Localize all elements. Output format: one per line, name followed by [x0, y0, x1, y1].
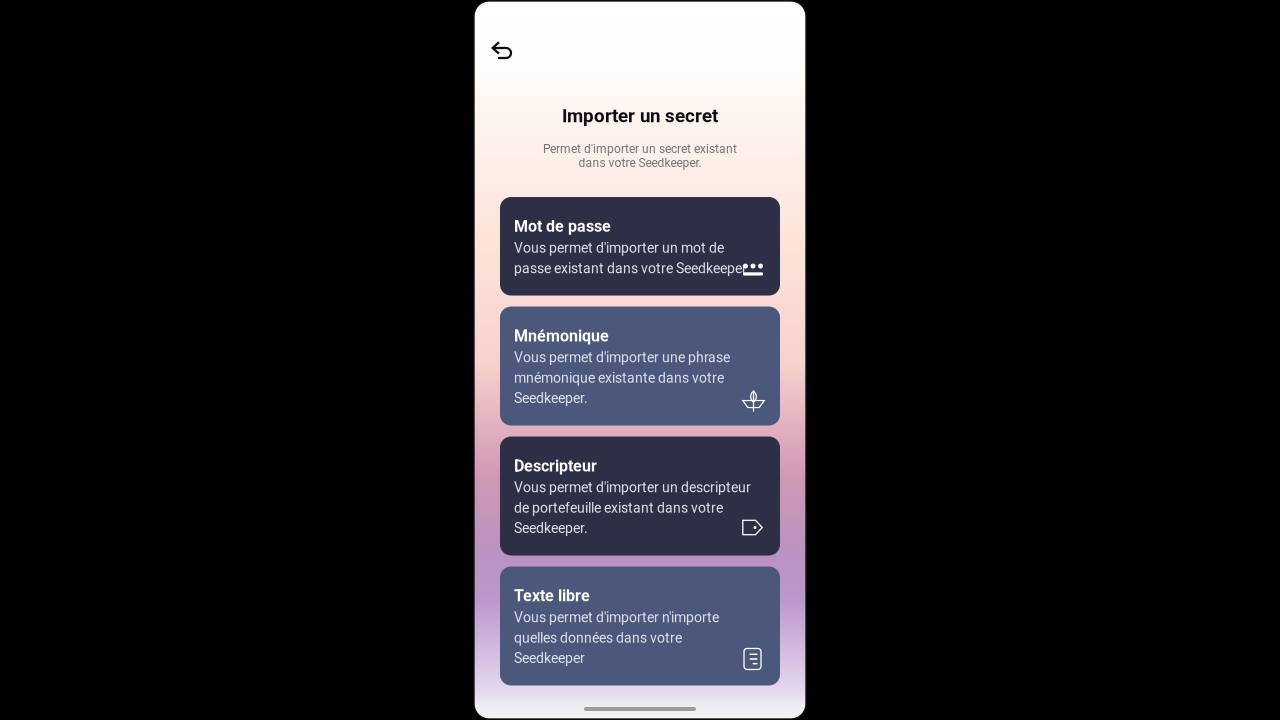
staticText: Texte libre [514, 586, 590, 605]
staticText: Vous permet d'importer n'importe [514, 609, 719, 626]
staticText: Permet d'importer un secret existant [543, 142, 737, 156]
staticText: dans votre Seedkeeper. [578, 156, 701, 170]
staticText: Seedkeeper. [514, 520, 588, 536]
staticText: passe existant dans votre Seedkeeper [514, 260, 747, 277]
button[interactable]: Mot de passe [500, 197, 780, 296]
staticText: Vous permet d'importer un descripteur [514, 479, 751, 496]
staticText: Importer un secret [562, 105, 718, 127]
staticText: Mnémonique [514, 327, 609, 345]
button[interactable]: Texte libre [500, 566, 780, 685]
button[interactable]: Back [474, 32, 524, 70]
staticText: Mot de passe [514, 217, 611, 236]
staticText: Vous permet d'importer un mot de [514, 240, 724, 256]
staticText: mnémonique existante dans votre [514, 370, 724, 386]
staticText: Seedkeeper. [514, 390, 588, 406]
button[interactable]: Descripteur [500, 436, 780, 555]
button[interactable]: Mnémonique [500, 307, 780, 426]
staticText: Seedkeeper [514, 650, 585, 666]
staticText: Descripteur [514, 456, 597, 475]
staticText: Vous permet d'importer une phrase [514, 349, 730, 366]
staticText: de portefeuille existant dans votre [514, 500, 723, 516]
staticText: quelles données dans votre [514, 630, 682, 646]
